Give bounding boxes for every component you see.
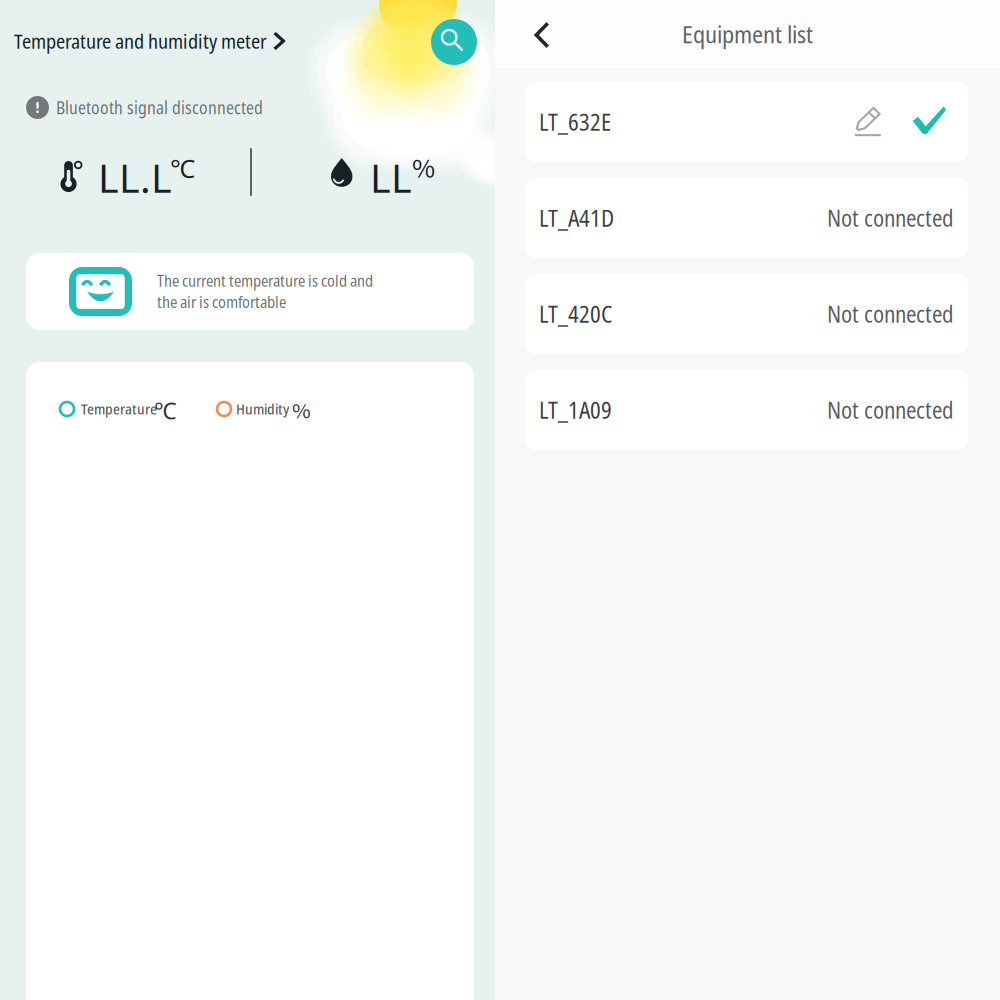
staticText: ℃ — [170, 151, 195, 185]
button[interactable]: LT_A41D — [525, 178, 968, 258]
staticText: Bluetooth signal disconnected — [56, 96, 263, 119]
button[interactable]: LT_1A09 — [525, 370, 968, 450]
staticText: % — [292, 395, 311, 427]
staticText: Equipment list — [682, 18, 813, 50]
staticText: Temperature and humidity meter — [14, 28, 267, 54]
staticText: % — [412, 149, 435, 189]
staticText: LL — [370, 149, 412, 210]
staticText: LL.L — [98, 149, 172, 210]
staticText: Not connected — [827, 299, 954, 329]
button[interactable]: Temperature and humidity meter — [14, 24, 285, 58]
button[interactable]: LT_632E — [525, 82, 968, 162]
staticText: Humidity — [236, 399, 289, 418]
button[interactable]: Back — [519, 12, 565, 58]
staticText: The current temperature is cold and the … — [157, 270, 373, 312]
staticText: LT_420C — [539, 299, 612, 329]
staticText: LT_A41D — [539, 203, 614, 233]
staticText: Not connected — [827, 395, 954, 425]
staticText: Temperature — [81, 399, 157, 418]
staticText: Not connected — [827, 203, 954, 233]
button[interactable]: Search — [431, 19, 477, 65]
staticText: ℃ — [154, 395, 177, 426]
staticText: LT_1A09 — [539, 395, 612, 425]
staticText: LT_632E — [539, 107, 611, 137]
button[interactable]: LT_420C — [525, 274, 968, 354]
